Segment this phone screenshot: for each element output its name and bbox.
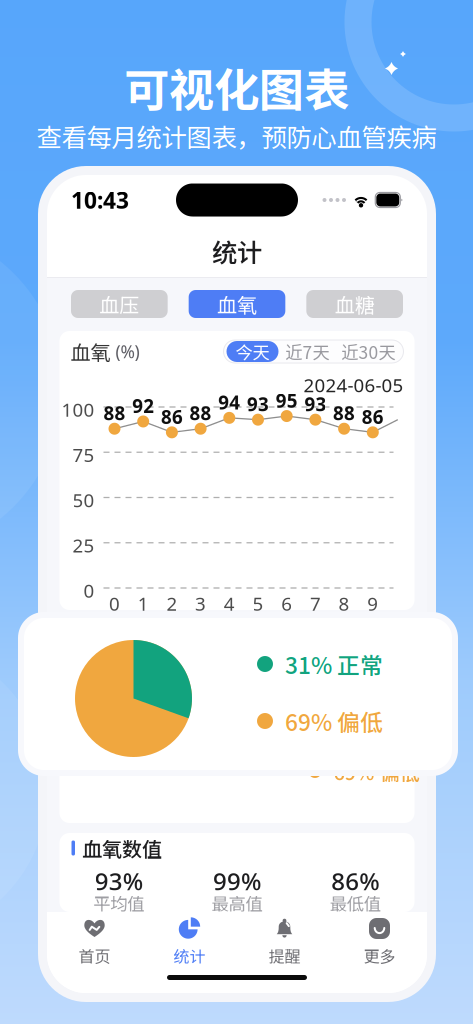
button[interactable]: 近30天 xyxy=(336,341,400,362)
staticText: 8 xyxy=(339,591,350,616)
staticText: 1 xyxy=(138,591,149,616)
staticText: 0 xyxy=(83,578,94,603)
staticText: 0 xyxy=(109,591,120,616)
staticText: 可视化图表 xyxy=(124,54,349,120)
staticText: 最低值 xyxy=(330,890,381,916)
staticText: 92 xyxy=(132,393,154,418)
staticText: 今天 xyxy=(235,339,269,364)
staticText: 86 xyxy=(362,404,384,429)
staticText: 血氧数值 xyxy=(82,833,162,862)
staticText: 2 xyxy=(166,591,177,616)
staticText: 88 xyxy=(333,401,355,425)
staticText: 首页 xyxy=(78,944,110,967)
staticText: 93 xyxy=(247,392,269,416)
staticText: 血糖 xyxy=(335,289,375,318)
staticText: 7 xyxy=(310,591,321,616)
button[interactable]: 近7天 xyxy=(278,341,336,362)
staticText: 100 xyxy=(61,397,94,422)
button[interactable]: 今天 xyxy=(226,341,278,362)
staticText: 统计 xyxy=(173,944,205,967)
staticText: 88 xyxy=(103,401,125,425)
button[interactable]: 血氧 xyxy=(189,290,285,318)
staticText: 6 xyxy=(281,591,292,616)
staticText: 血氧 xyxy=(217,289,257,318)
staticText: 75 xyxy=(72,442,94,467)
staticText: 31% 正常 xyxy=(333,697,419,726)
button[interactable]: 首页 xyxy=(47,916,142,967)
staticText: 统计 xyxy=(212,233,262,269)
staticText: 4 xyxy=(224,591,235,616)
staticText: 最高值 xyxy=(211,890,262,916)
button[interactable]: 统计 xyxy=(142,916,237,967)
button[interactable]: 提醒 xyxy=(237,916,332,967)
staticText: 86 xyxy=(161,404,183,429)
staticText: 50 xyxy=(72,487,94,512)
staticText: (%) xyxy=(110,340,139,363)
staticText: 31% 正常 xyxy=(285,648,383,680)
staticText: 95 xyxy=(276,388,298,413)
staticText: 提醒 xyxy=(268,944,300,967)
button[interactable]: 更多 xyxy=(332,916,427,967)
staticText: 88 xyxy=(190,401,212,425)
staticText: 9 xyxy=(367,591,378,616)
staticText: 查看每月统计图表，预防心血管疾病 xyxy=(36,118,436,154)
staticText: 86% xyxy=(331,865,379,897)
button[interactable]: 血糖 xyxy=(306,290,403,318)
staticText: 血压 xyxy=(99,289,139,318)
staticText: 平均值 xyxy=(93,890,144,916)
button[interactable]: 血压 xyxy=(71,290,168,318)
staticText: 血氧 xyxy=(70,337,110,366)
staticText: 5 xyxy=(252,591,263,616)
staticText: 3 xyxy=(195,591,206,616)
staticText: 2024-06-05 xyxy=(303,373,403,397)
staticText: 近7天 xyxy=(285,339,329,364)
staticText: 99% xyxy=(213,865,261,897)
staticText: 93 xyxy=(304,392,326,416)
staticText: 25 xyxy=(72,533,94,558)
staticText: 93% xyxy=(95,865,143,897)
staticText: 69% 偏低 xyxy=(333,757,419,786)
staticText: 94 xyxy=(218,390,240,415)
staticText: 近30天 xyxy=(341,339,395,364)
staticText: 69% 偏低 xyxy=(285,705,383,737)
staticText: 10:43 xyxy=(71,185,129,215)
staticText: 更多 xyxy=(363,944,395,967)
